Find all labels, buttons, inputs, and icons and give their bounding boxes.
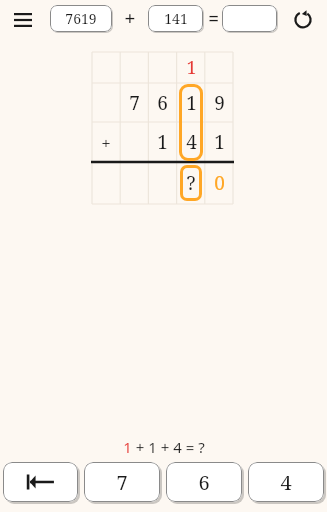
button[interactable]: 7619 [50, 5, 112, 32]
staticText: 6 [198, 469, 210, 496]
staticText: 1 [214, 129, 225, 155]
staticText: 1 + 1 + 4 = ? [123, 437, 205, 457]
staticText: 7619 [65, 9, 97, 28]
staticText: 4 [280, 469, 292, 496]
staticText: 7 [116, 469, 128, 496]
staticText: = [208, 6, 219, 32]
staticText: 4 [186, 129, 197, 155]
staticText: 1 [157, 129, 168, 155]
button[interactable]: 7 [84, 462, 160, 502]
staticText: + [101, 131, 111, 154]
staticText: 1 [186, 55, 197, 80]
button[interactable]: Backspace [3, 462, 78, 502]
staticText: 9 [214, 90, 225, 116]
button[interactable]: Menu [8, 6, 38, 34]
button[interactable]: Reset [288, 5, 318, 33]
staticText: ? [186, 170, 196, 196]
staticText: 141 [164, 9, 188, 28]
staticText: 6 [157, 90, 168, 116]
staticText: 1 [186, 90, 197, 116]
button[interactable] [222, 5, 277, 32]
staticText: 7 [129, 90, 140, 116]
button[interactable]: 6 [166, 462, 242, 502]
staticText: + [124, 5, 136, 32]
button[interactable]: 141 [148, 5, 203, 32]
staticText: 0 [214, 170, 225, 196]
button[interactable]: 4 [248, 462, 324, 502]
